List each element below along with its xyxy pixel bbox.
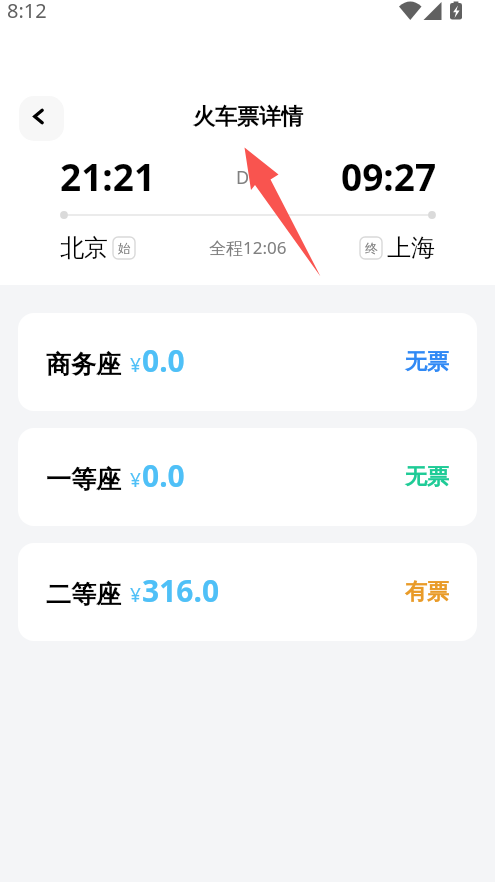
- staticText: D31: [236, 165, 270, 190]
- staticText: 一等座: [46, 464, 121, 495]
- button[interactable]: 商务座: [18, 313, 477, 411]
- staticText: 北京: [60, 233, 108, 263]
- staticText: 09:27: [341, 151, 437, 201]
- staticText: 终: [365, 240, 378, 256]
- staticText: 0.0: [142, 340, 185, 381]
- button[interactable]: 一等座: [18, 428, 477, 526]
- staticText: ¥: [130, 352, 141, 378]
- staticText: ¥: [130, 582, 141, 608]
- staticText: 火车票详情: [193, 103, 303, 131]
- staticText: 21:21: [60, 151, 156, 201]
- staticText: 有票: [405, 578, 449, 606]
- staticText: 8:12: [7, 0, 47, 21]
- staticText: 始: [118, 240, 131, 256]
- staticText: 无票: [405, 463, 449, 491]
- staticText: 商务座: [46, 349, 121, 380]
- staticText: 上海: [387, 233, 435, 263]
- staticText: 316.0: [142, 570, 220, 611]
- staticText: ¥: [130, 467, 141, 493]
- staticText: 0.0: [142, 455, 185, 496]
- button[interactable]: Back: [19, 96, 64, 141]
- staticText: 无票: [405, 348, 449, 376]
- staticText: 全程12:06: [209, 236, 287, 259]
- button[interactable]: 二等座: [18, 543, 477, 641]
- staticText: 二等座: [46, 579, 121, 610]
